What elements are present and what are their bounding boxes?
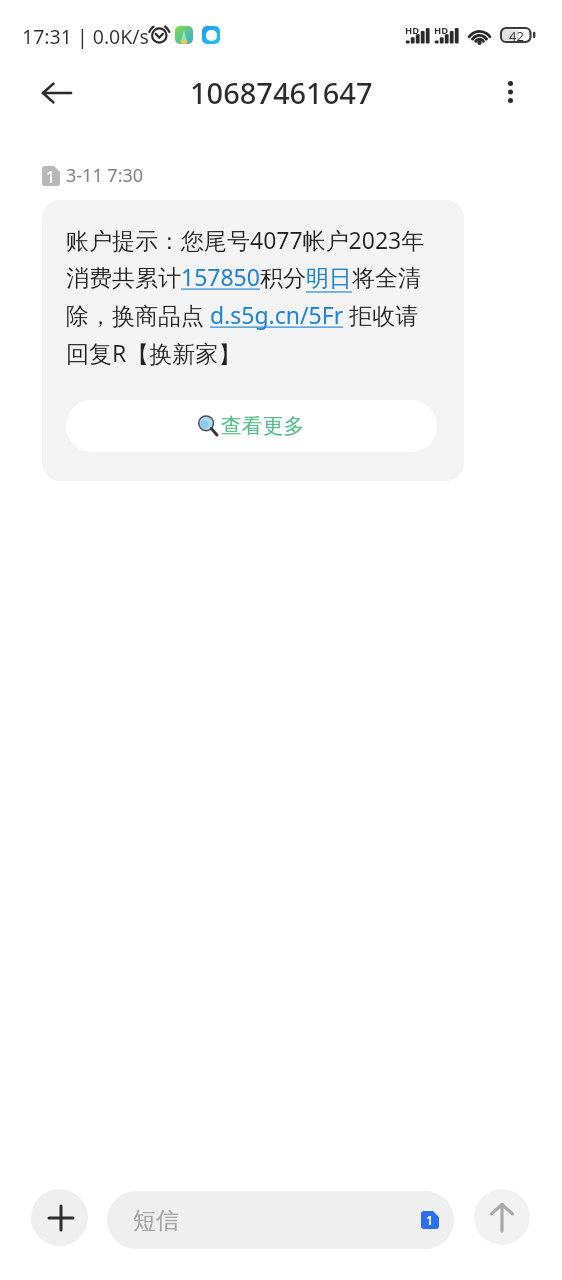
staticText: 1 [46, 166, 56, 186]
staticText: HD [405, 24, 420, 37]
staticText: 42 [509, 27, 524, 43]
button[interactable]: 短信 [107, 1191, 454, 1249]
button[interactable]: 查看更多 [66, 400, 437, 452]
button[interactable]: 账户提示：您尾号4077帐户2023年消费共累计157850积分明日将全清除，换… [42, 200, 464, 481]
button[interactable]: Send [474, 1189, 530, 1245]
staticText: 10687461647 [190, 73, 373, 112]
staticText: 1 [426, 1211, 434, 1229]
staticText: 账户提示：您尾号4077帐户2023年消费共累计157850积分明日将全清除，换… [66, 224, 440, 369]
staticText: 查看更多 [221, 413, 305, 439]
staticText: 3-11 7:30 [66, 163, 144, 188]
staticText: 短信 [133, 1206, 179, 1235]
button[interactable]: Add attachment [31, 1189, 88, 1246]
staticText: HD [434, 24, 449, 37]
button[interactable]: More options [488, 70, 532, 114]
button[interactable]: Back [33, 69, 81, 117]
staticText: 17:31 | 0.0K/s [22, 23, 149, 50]
